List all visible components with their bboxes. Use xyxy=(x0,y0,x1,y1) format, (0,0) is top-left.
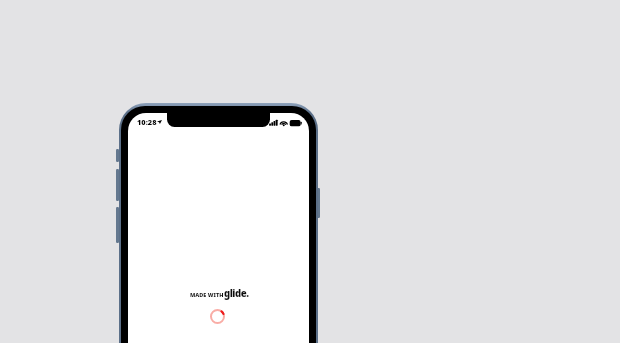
staticText: 10:28 xyxy=(137,117,157,127)
staticText: glide. xyxy=(224,287,249,300)
staticText: MADE WITH xyxy=(190,291,224,298)
